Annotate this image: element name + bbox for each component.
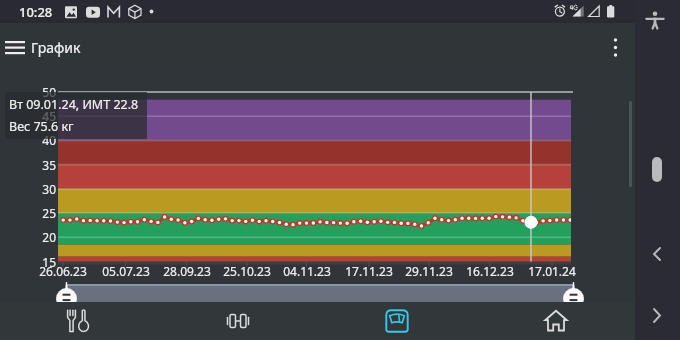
staticText: 16.12.23 — [460, 263, 520, 279]
button[interactable]: Accessibility — [641, 6, 669, 34]
staticText: 35 — [28, 157, 56, 173]
staticText: 40 — [28, 132, 56, 148]
staticText: 45 — [28, 108, 56, 124]
staticText: 26.06.23 — [33, 263, 93, 279]
staticText: 20 — [28, 229, 56, 245]
staticText: 25.10.23 — [217, 263, 277, 279]
staticText: 17.11.23 — [339, 263, 399, 279]
button[interactable]: Range start — [56, 282, 78, 303]
button[interactable]: Workouts — [158, 302, 317, 340]
staticText: График — [31, 38, 81, 57]
button[interactable]: More options — [596, 23, 635, 72]
button[interactable]: Home — [476, 302, 635, 340]
staticText: 30 — [28, 181, 56, 197]
staticText: 17.01.24 — [522, 263, 582, 279]
button[interactable]: Food diary — [0, 302, 158, 340]
staticText: 50 — [28, 84, 56, 100]
staticText: Вес 75.6 кг — [9, 118, 74, 135]
staticText: 28.09.23 — [157, 263, 217, 279]
staticText: Вт 09.01.24, ИМТ 22.8 — [9, 96, 139, 113]
staticText: 25 — [28, 205, 56, 221]
staticText: 29.11.23 — [399, 263, 459, 279]
staticText: 10:28 — [19, 3, 53, 21]
button[interactable]: Forward — [645, 304, 669, 328]
staticText: 04.11.23 — [277, 263, 337, 279]
button[interactable]: Range end — [563, 282, 585, 303]
staticText: 15 — [28, 254, 56, 270]
button[interactable]: Home — [652, 157, 662, 182]
button[interactable]: Weight chart — [317, 302, 476, 340]
button[interactable]: Back — [645, 242, 669, 266]
staticText: 05.07.23 — [96, 263, 156, 279]
button[interactable]: Open navigation menu — [0, 23, 29, 72]
